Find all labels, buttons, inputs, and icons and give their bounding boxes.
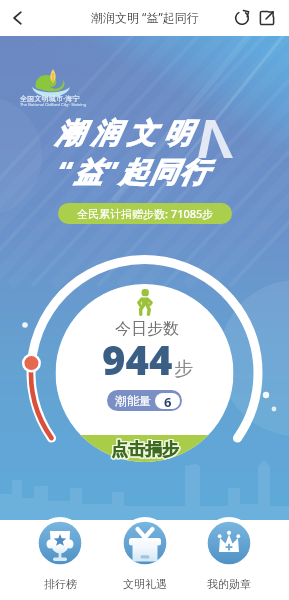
staticText: 点击捐步: [111, 438, 179, 459]
button[interactable]: 排行榜: [26, 515, 94, 595]
staticText: 点击捐步: [110, 440, 178, 461]
staticText: 点击捐步: [110, 438, 178, 459]
staticText: 全国文明城市·海宁: [20, 94, 80, 104]
button[interactable]: Back: [0, 0, 36, 36]
button[interactable]: 文明礼遇: [111, 515, 179, 595]
button[interactable]: 我的勋章: [195, 515, 263, 595]
staticText: 全民累计捐赠步数: 71085步: [77, 206, 214, 221]
staticText: 点击捐步: [112, 438, 180, 459]
staticText: 排行榜: [44, 577, 77, 591]
staticText: 今日步数: [115, 319, 179, 339]
staticText: “益”起同行: [58, 152, 210, 190]
staticText: 点击捐步: [112, 439, 180, 460]
staticText: 文明礼遇: [123, 577, 167, 591]
button[interactable]: 潮能量: [107, 390, 182, 411]
staticText: 潮润文明 “益”起同行: [91, 9, 199, 25]
staticText: 点击捐步: [110, 439, 178, 460]
staticText: 944: [102, 332, 173, 386]
staticText: 点击捐步: [111, 440, 179, 461]
button[interactable]: Refresh: [229, 5, 255, 31]
staticText: The National Civilized City · Haining: [20, 102, 87, 107]
staticText: 步: [174, 357, 193, 381]
button[interactable]: 点击捐步: [0, 436, 289, 462]
staticText: 我的勋章: [207, 577, 251, 591]
staticText: 6: [164, 393, 172, 409]
staticText: 点击捐步: [112, 440, 180, 461]
staticText: 潮能量: [115, 393, 151, 408]
staticText: 点击捐步: [111, 439, 179, 460]
button[interactable]: 全民累计捐赠步数: 71085步: [58, 203, 232, 224]
button[interactable]: Open in browser: [254, 5, 280, 31]
staticText: 潮润文明: [51, 116, 195, 151]
